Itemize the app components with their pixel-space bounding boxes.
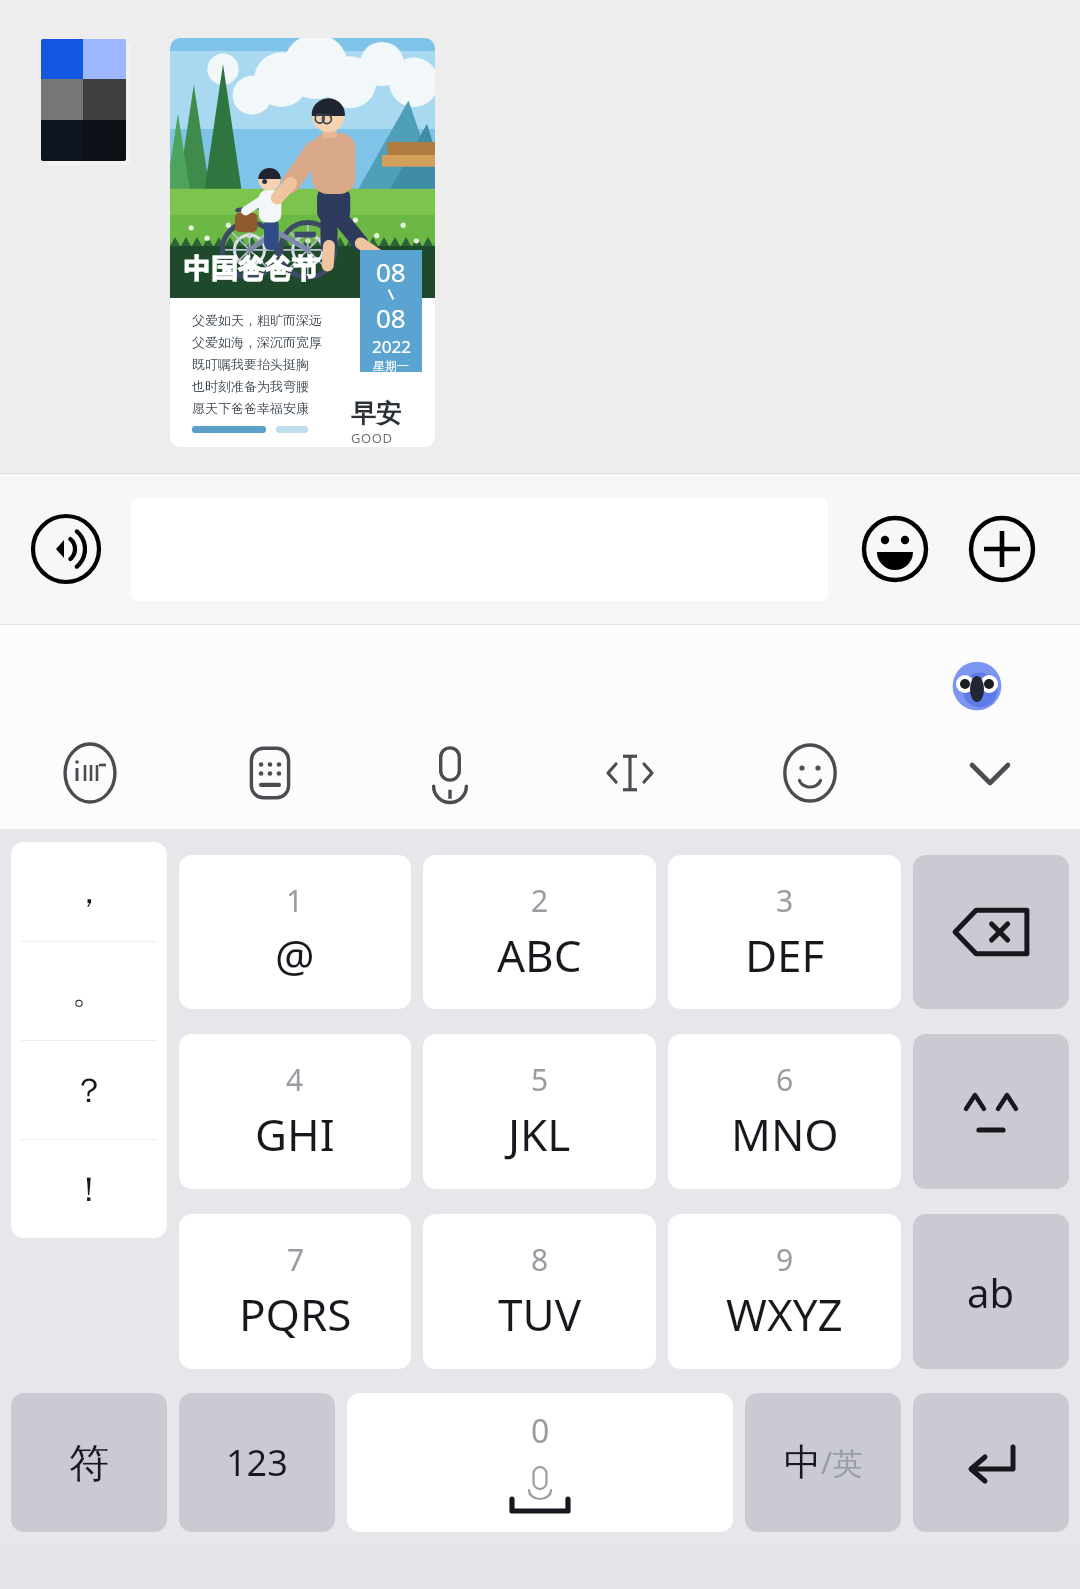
staticText: ab bbox=[967, 1265, 1015, 1319]
staticText: GHI bbox=[255, 1104, 335, 1164]
button[interactable]: ab bbox=[913, 1214, 1069, 1369]
staticText: MNO bbox=[731, 1104, 839, 1164]
button[interactable]: 123 bbox=[179, 1393, 335, 1532]
staticText: 2 bbox=[531, 880, 549, 921]
staticText: ， bbox=[72, 870, 106, 913]
button[interactable]: 5 bbox=[423, 1034, 656, 1189]
staticText: @ bbox=[275, 925, 315, 985]
button[interactable]: ！ bbox=[11, 1140, 167, 1238]
staticText: 8 bbox=[531, 1239, 549, 1280]
button[interactable]: 1 bbox=[179, 855, 411, 1009]
button[interactable]: 。 bbox=[11, 942, 167, 1040]
button[interactable]: Delete bbox=[913, 855, 1069, 1009]
staticText: 6 bbox=[776, 1059, 794, 1100]
button[interactable]: 中国爸爸节 bbox=[170, 38, 435, 447]
staticText: ABC bbox=[497, 925, 582, 985]
button[interactable]: 8 bbox=[423, 1214, 656, 1369]
staticText: 符 bbox=[69, 1438, 109, 1488]
button[interactable]: Input method bbox=[0, 717, 180, 829]
staticText: /英 bbox=[821, 1442, 863, 1483]
button[interactable]: ？ bbox=[11, 1041, 167, 1139]
staticText: 5 bbox=[531, 1059, 549, 1100]
button[interactable]: Edit cursor bbox=[540, 717, 720, 829]
staticText: 1 bbox=[286, 880, 304, 921]
staticText: GOOD bbox=[351, 429, 393, 447]
button[interactable]: Keyboard layout bbox=[180, 717, 360, 829]
button[interactable]: Voice bbox=[360, 717, 540, 829]
staticText: 中 bbox=[784, 1439, 821, 1486]
button[interactable]: Kaomoji bbox=[913, 1034, 1069, 1189]
staticText: 123 bbox=[226, 1438, 288, 1487]
button[interactable]: Enter bbox=[913, 1393, 1069, 1532]
staticText: 父爱如海，深沉而宽厚 bbox=[192, 334, 322, 350]
button[interactable]: Emoji bbox=[855, 509, 935, 589]
button[interactable]: 9 bbox=[668, 1214, 901, 1369]
staticText: 父爱如天，粗旷而深远 bbox=[192, 312, 322, 328]
staticText: 3 bbox=[776, 880, 794, 921]
button[interactable]: Space bbox=[347, 1393, 733, 1532]
staticText: 08 bbox=[376, 254, 406, 289]
staticText: PQRS bbox=[239, 1284, 352, 1344]
button[interactable]: Hide keyboard bbox=[900, 717, 1080, 829]
staticText: 。 bbox=[72, 970, 106, 1013]
staticText: 7 bbox=[287, 1239, 305, 1280]
button[interactable]: 2 bbox=[423, 855, 656, 1009]
staticText: 2022 bbox=[372, 335, 411, 358]
button[interactable]: Assistant bbox=[948, 657, 1006, 715]
staticText: ？ bbox=[72, 1069, 106, 1112]
button[interactable]: 3 bbox=[668, 855, 901, 1009]
staticText: 中国爸爸节 bbox=[184, 252, 319, 286]
staticText: 既叮嘱我要抬头挺胸 bbox=[192, 356, 309, 372]
button[interactable]: 符 bbox=[11, 1393, 167, 1532]
button[interactable]: 中 bbox=[745, 1393, 901, 1532]
staticText: DEF bbox=[745, 925, 825, 985]
staticText: TUV bbox=[498, 1284, 582, 1344]
staticText: 也时刻准备为我弯腰 bbox=[192, 378, 309, 394]
staticText: JKL bbox=[508, 1104, 571, 1164]
button[interactable]: Voice input bbox=[27, 510, 105, 588]
button[interactable]: 7 bbox=[179, 1214, 411, 1369]
button[interactable]: ， bbox=[11, 842, 167, 941]
staticText: 9 bbox=[776, 1239, 794, 1280]
staticText: ！ bbox=[72, 1168, 106, 1211]
button[interactable]: Emoticons bbox=[720, 717, 900, 829]
staticText: 4 bbox=[286, 1059, 304, 1100]
button[interactable]: 6 bbox=[668, 1034, 901, 1189]
button[interactable] bbox=[41, 39, 129, 165]
staticText: 早安 bbox=[351, 398, 401, 429]
staticText: 星期一 bbox=[373, 358, 409, 372]
staticText: WXYZ bbox=[726, 1284, 843, 1344]
staticText: 08 bbox=[376, 300, 406, 335]
staticText: 愿天下爸爸幸福安康 bbox=[192, 400, 309, 416]
button[interactable]: 4 bbox=[179, 1034, 411, 1189]
button[interactable]: More bbox=[962, 509, 1042, 589]
staticText: 0 bbox=[531, 1409, 550, 1453]
